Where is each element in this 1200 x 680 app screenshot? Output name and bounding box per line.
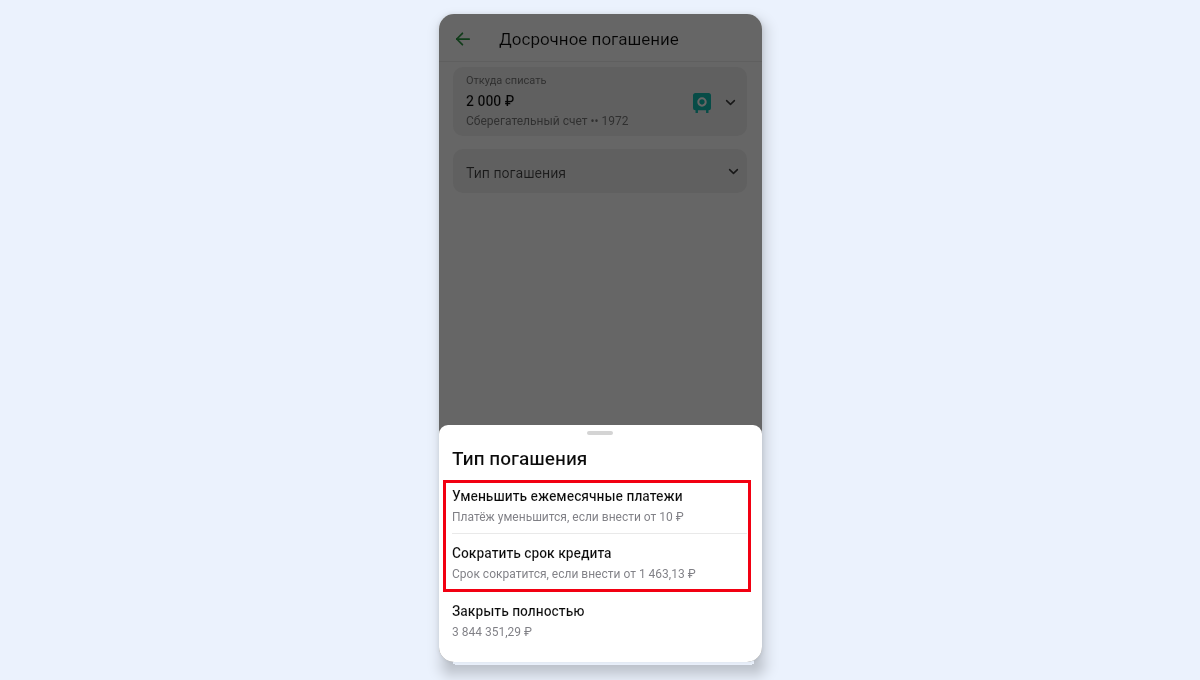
- staticText: 2 000 ₽: [466, 93, 515, 109]
- button[interactable]: Back: [450, 26, 476, 52]
- staticText: Откуда списать: [466, 74, 547, 87]
- staticText: Тип погашения: [466, 165, 567, 182]
- button[interactable]: Тип погашения: [453, 149, 747, 193]
- staticText: Закрыть полностью: [452, 603, 585, 619]
- button[interactable]: Закрыть полностью: [439, 603, 762, 653]
- staticText: Сберегательный счет •• 1972: [466, 114, 629, 128]
- button[interactable]: Сократить срок кредита: [439, 545, 762, 595]
- staticText: Уменьшить ежемесячные платежи: [452, 488, 683, 504]
- staticText: Сократить срок кредита: [452, 545, 612, 561]
- staticText: 3 844 351,29 ₽: [452, 625, 532, 639]
- staticText: Платёж уменьшится, если внести от 10 ₽: [452, 510, 684, 524]
- staticText: Тип погашения: [452, 447, 588, 469]
- staticText: Срок сократится, если внести от 1 463,13…: [452, 567, 696, 581]
- staticText: Досрочное погашение: [499, 29, 679, 49]
- button[interactable]: Уменьшить ежемесячные платежи: [439, 488, 762, 538]
- button[interactable]: Откуда списать: [453, 67, 747, 136]
